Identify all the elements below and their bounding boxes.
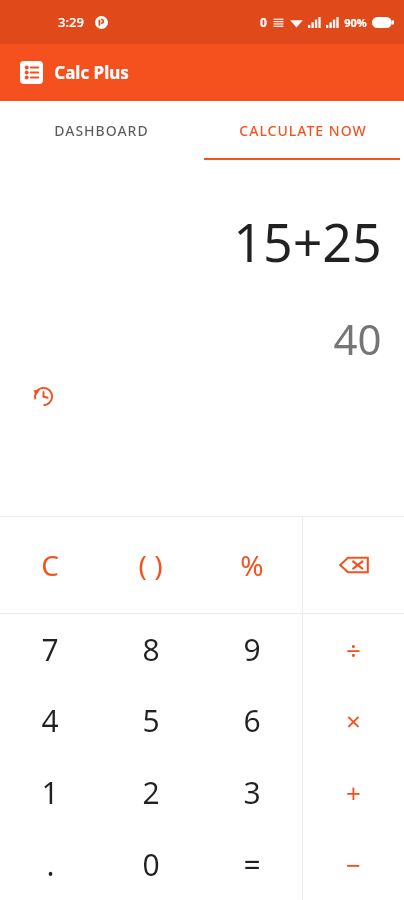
button[interactable]: 8: [100, 614, 201, 685]
staticText: 7: [41, 629, 59, 670]
button[interactable]: History: [26, 379, 60, 413]
button[interactable]: 2: [100, 756, 201, 828]
button[interactable]: .: [0, 828, 100, 900]
button[interactable]: ×: [303, 685, 404, 756]
button[interactable]: ÷: [303, 614, 404, 685]
staticText: 3: [243, 772, 261, 813]
staticText: 0: [142, 844, 160, 885]
staticText: 8: [142, 629, 160, 670]
staticText: 6: [243, 700, 261, 741]
button[interactable]: DASHBOARD: [0, 101, 202, 160]
staticText: 2: [142, 772, 160, 813]
button[interactable]: =: [201, 828, 302, 900]
button[interactable]: 9: [201, 614, 302, 685]
staticText: ÷: [346, 632, 361, 667]
staticText: 5: [142, 700, 160, 741]
staticText: .: [46, 844, 55, 885]
staticText: Calc Plus: [54, 61, 129, 84]
button[interactable]: 3: [201, 756, 302, 828]
button[interactable]: 4: [0, 685, 100, 756]
button[interactable]: C: [0, 517, 100, 613]
staticText: 15+25: [233, 206, 382, 277]
staticText: %: [240, 546, 264, 584]
button[interactable]: 0: [100, 828, 201, 900]
button[interactable]: CALCULATE NOW: [202, 101, 404, 160]
button[interactable]: 6: [201, 685, 302, 756]
staticText: C: [41, 546, 59, 584]
staticText: 9: [243, 629, 261, 670]
staticText: 90%: [344, 15, 367, 30]
button[interactable]: 7: [0, 614, 100, 685]
staticText: DASHBOARD: [54, 121, 149, 140]
staticText: 1: [41, 772, 59, 813]
staticText: +: [346, 775, 361, 810]
staticText: −: [346, 847, 361, 882]
staticText: 3:29: [58, 13, 84, 31]
staticText: 4: [41, 700, 59, 741]
staticText: CALCULATE NOW: [239, 121, 367, 140]
button[interactable]: ( ): [100, 517, 201, 613]
staticText: ( ): [138, 546, 163, 584]
button[interactable]: %: [201, 517, 302, 613]
staticText: 0: [260, 14, 267, 30]
button[interactable]: 5: [100, 685, 201, 756]
button[interactable]: +: [303, 756, 404, 828]
staticText: ×: [346, 703, 361, 738]
button[interactable]: Backspace: [303, 517, 404, 613]
button[interactable]: 1: [0, 756, 100, 828]
staticText: 40: [333, 310, 382, 367]
staticText: =: [243, 844, 261, 885]
button[interactable]: −: [303, 828, 404, 900]
